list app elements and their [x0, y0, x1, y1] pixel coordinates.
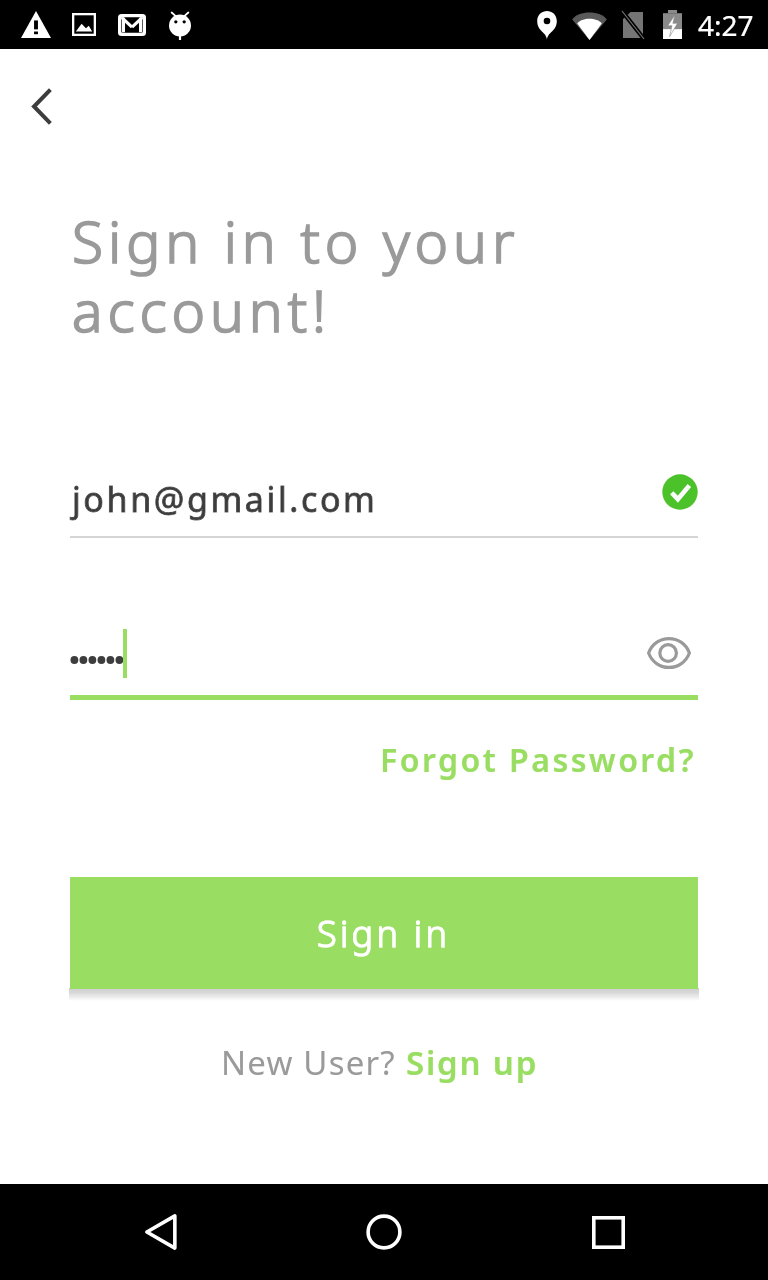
staticText: john@gmail.com	[72, 476, 378, 522]
button[interactable]: Show password	[636, 620, 702, 686]
staticText: Sign in to your account!	[72, 202, 520, 349]
button[interactable]: Forgot Password?	[364, 726, 712, 794]
staticText: 4:27	[698, 6, 754, 44]
staticText: Sign in	[317, 909, 451, 958]
button[interactable]: Recent apps	[576, 1200, 640, 1264]
button[interactable]: Sign up	[406, 1040, 539, 1085]
staticText: Forgot Password?	[380, 738, 696, 782]
button[interactable]: Password	[70, 626, 698, 700]
staticText: New User?	[221, 1040, 406, 1085]
staticText: Sign in	[317, 909, 451, 958]
button[interactable]: Back	[13, 70, 69, 142]
button[interactable]: Email address john@gmail.com	[70, 466, 698, 538]
staticText: Sign up	[406, 1040, 539, 1085]
button[interactable]: Sign in	[70, 877, 698, 989]
staticText: john@gmail.com	[72, 476, 378, 522]
staticText: Sign in to your account!	[72, 202, 520, 349]
button[interactable]: Back	[128, 1197, 192, 1267]
button[interactable]: Home	[352, 1200, 416, 1264]
